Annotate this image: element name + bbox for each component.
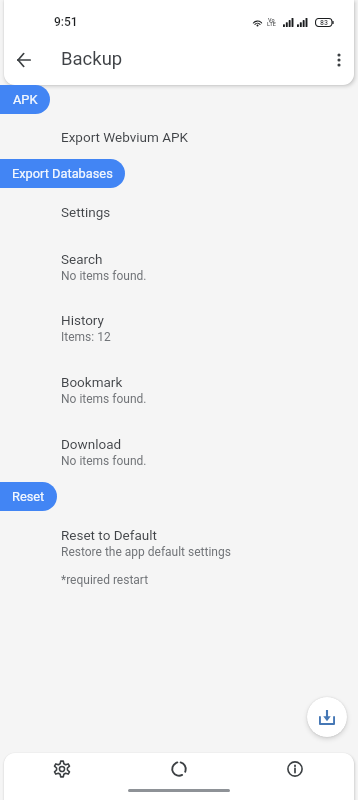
staticText: Bookmark: [61, 374, 123, 390]
staticText: *required restart: [61, 573, 149, 587]
staticText: Export Databases: [12, 166, 113, 181]
button[interactable]: Back: [4, 40, 44, 80]
staticText: 83: [320, 19, 328, 27]
button[interactable]: Search: [0, 251, 358, 289]
staticText: Items: 12: [61, 330, 111, 344]
staticText: APK: [13, 92, 38, 107]
staticText: Reset: [12, 489, 45, 504]
button[interactable]: Export Webvium APK: [0, 129, 358, 151]
staticText: Vo: [268, 17, 275, 23]
button[interactable]: Download: [307, 697, 347, 737]
staticText: Search: [61, 251, 103, 267]
staticText: Settings: [61, 204, 111, 220]
button[interactable]: Settings: [0, 204, 358, 226]
button[interactable]: Reset: [0, 482, 57, 511]
staticText: Backup: [61, 48, 123, 70]
staticText: Download: [61, 436, 122, 452]
button[interactable]: History: [0, 312, 358, 350]
button[interactable]: APK: [0, 85, 50, 114]
button[interactable]: Settings: [38, 745, 86, 793]
button[interactable]: Bookmark: [0, 374, 358, 412]
button[interactable]: Reset to Default: [0, 527, 358, 565]
staticText: No items found.: [61, 392, 147, 406]
staticText: Export Webvium APK: [61, 129, 189, 145]
staticText: History: [61, 312, 104, 328]
button[interactable]: Export Databases: [0, 159, 125, 188]
staticText: 9:51: [54, 15, 78, 29]
staticText: No items found.: [61, 269, 147, 283]
staticText: LTE: [267, 21, 276, 27]
staticText: Reset to Default: [61, 527, 157, 543]
button[interactable]: Download: [0, 436, 358, 474]
button[interactable]: More options: [319, 40, 358, 80]
staticText: No items found.: [61, 454, 147, 468]
button[interactable]: Refresh: [155, 745, 203, 793]
staticText: Restore the app default settings: [61, 545, 231, 559]
button[interactable]: Info: [271, 745, 319, 793]
